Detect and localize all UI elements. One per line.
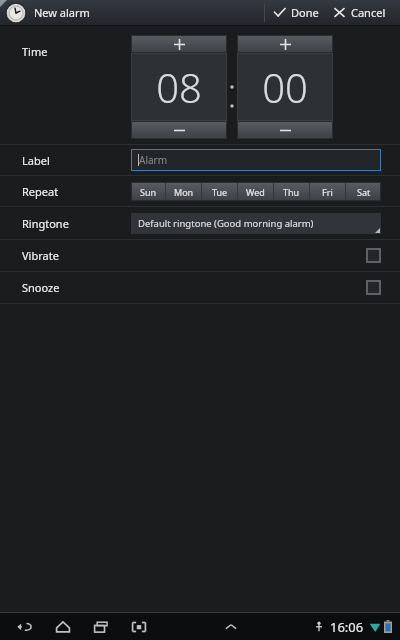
button[interactable]: Cancel [327, 0, 392, 25]
button[interactable]: Fri [310, 182, 345, 201]
staticText: Time [22, 44, 48, 59]
button[interactable]: Sat [346, 182, 381, 201]
button[interactable]: Vibrate [0, 240, 400, 271]
button[interactable]: Default ringtone (Good morning alarm) [131, 213, 381, 234]
button[interactable]: Thu [274, 182, 309, 201]
staticText: Default ringtone (Good morning alarm) [138, 217, 314, 230]
staticText: Repeat [22, 184, 131, 199]
staticText: Sun [140, 186, 157, 198]
button[interactable]: Screenshot [128, 616, 150, 638]
staticText: 16:06 [330, 618, 364, 636]
button[interactable]: Increment [131, 35, 227, 53]
staticText: Fri [322, 186, 333, 198]
staticText: Sat [357, 186, 371, 198]
staticText: Ringtone [22, 216, 131, 231]
button[interactable]: Wed [238, 182, 273, 201]
staticText: Cancel [351, 5, 386, 20]
button[interactable]: Sun [131, 182, 165, 201]
staticText: Vibrate [22, 248, 131, 263]
button[interactable]: Back [14, 616, 36, 638]
button[interactable]: Decrement [131, 121, 227, 139]
staticText: Snooze [22, 280, 131, 295]
button[interactable]: Recent apps [90, 616, 112, 638]
staticText: Alarm [139, 153, 168, 167]
staticText: Done [291, 5, 319, 20]
staticText: Mon [174, 186, 194, 198]
button[interactable]: Decrement [237, 121, 333, 139]
staticText: New alarm [34, 5, 90, 20]
staticText: Tue [212, 186, 228, 198]
staticText: Wed [246, 186, 265, 198]
staticText: 08 [156, 60, 202, 114]
staticText: 00 [262, 60, 308, 114]
button[interactable]: Home [52, 616, 74, 638]
staticText: Label [22, 153, 131, 168]
button[interactable]: Done [265, 0, 327, 25]
button[interactable]: Snooze [0, 272, 400, 303]
button[interactable]: Mon [166, 182, 201, 201]
button[interactable]: Expand [223, 619, 239, 635]
button[interactable]: Increment [237, 35, 333, 53]
button[interactable]: Alarm [131, 149, 381, 171]
staticText: Thu [283, 186, 300, 198]
button[interactable]: Tue [202, 182, 237, 201]
